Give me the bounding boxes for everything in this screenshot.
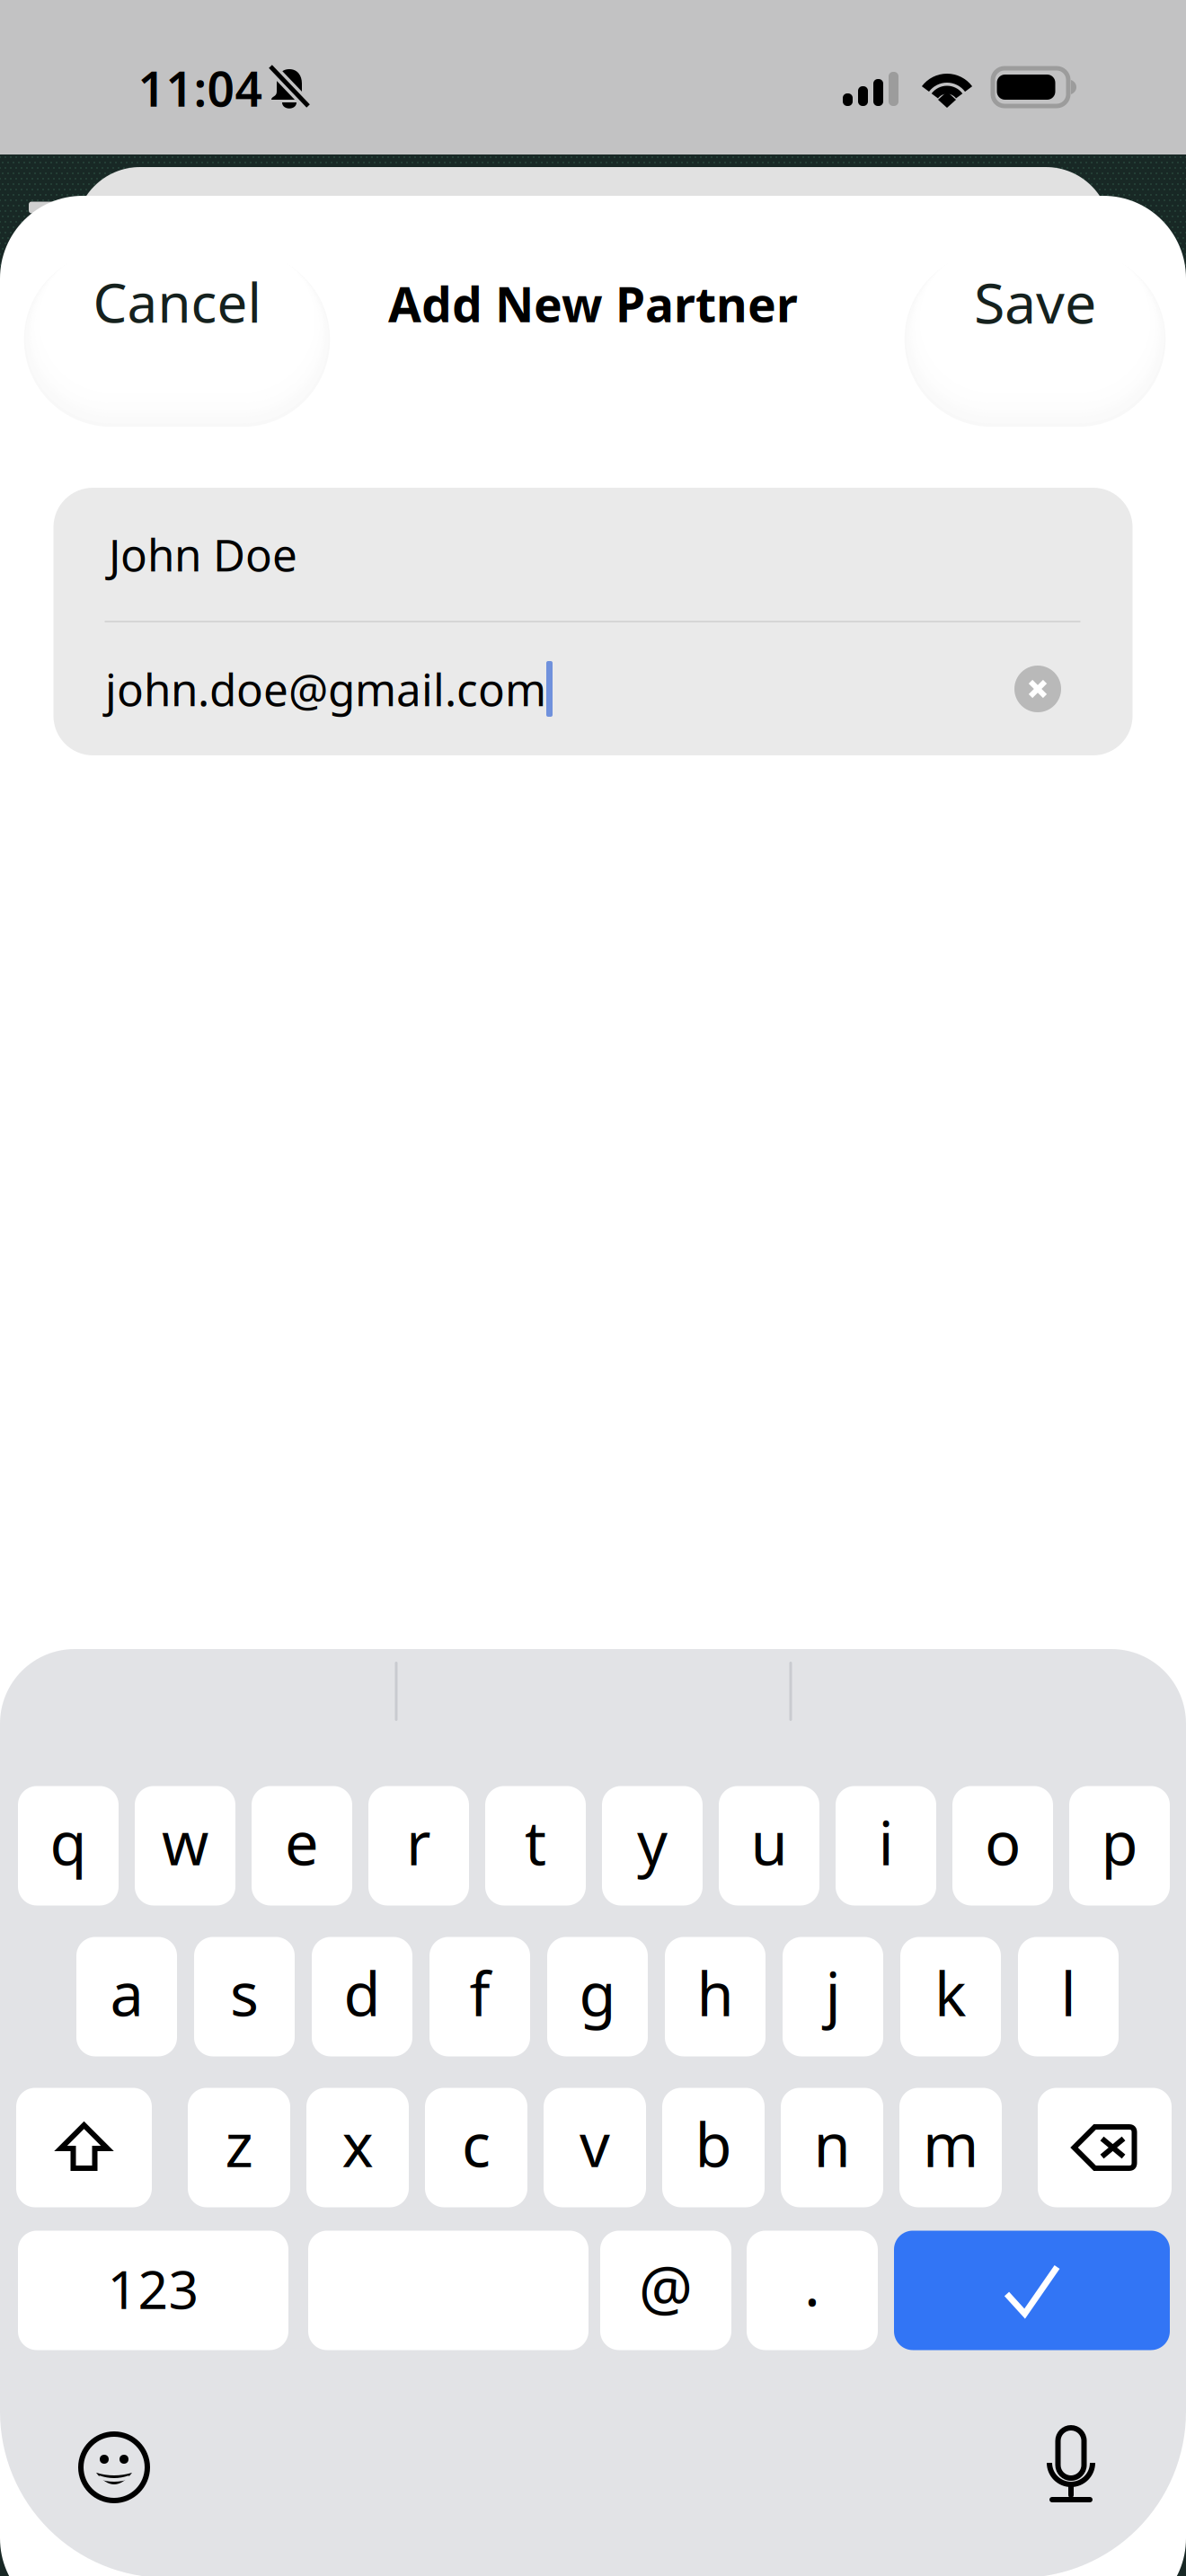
staticText: y: [637, 1802, 668, 1882]
staticText: l: [1061, 1953, 1076, 2033]
button[interactable]: q: [18, 1786, 119, 1906]
button[interactable]: u: [719, 1786, 819, 1906]
staticText: n: [814, 2104, 850, 2184]
staticText: s: [230, 1953, 259, 2033]
button[interactable]: o: [952, 1786, 1053, 1906]
staticText: a: [110, 1953, 143, 2033]
button[interactable]: i: [836, 1786, 936, 1906]
staticText: d: [344, 1953, 381, 2033]
staticText: 11:04: [138, 56, 263, 120]
staticText: k: [934, 1953, 967, 2033]
button[interactable]: Emoji: [77, 2430, 151, 2504]
button[interactable]: Dictation: [1043, 2425, 1099, 2504]
button[interactable]: g: [547, 1937, 648, 2056]
button[interactable]: john.doe@gmail.com: [53, 622, 1132, 756]
staticText: b: [695, 2104, 732, 2184]
staticText: j: [825, 1953, 841, 2033]
button[interactable]: f: [429, 1937, 530, 2056]
button[interactable]: t: [485, 1786, 586, 1906]
button[interactable]: a: [76, 1937, 177, 2056]
button[interactable]: p: [1069, 1786, 1170, 1906]
staticText: Cancel: [93, 266, 261, 338]
button[interactable]: c: [425, 2088, 527, 2207]
button[interactable]: e: [252, 1786, 352, 1906]
staticText: w: [162, 1802, 208, 1882]
button[interactable]: .: [747, 2231, 878, 2350]
button[interactable]: k: [900, 1937, 1001, 2056]
button[interactable]: h: [665, 1937, 766, 2056]
button[interactable]: v: [544, 2088, 646, 2207]
staticText: @: [639, 2247, 693, 2326]
staticText: r: [406, 1802, 431, 1882]
button[interactable]: Return: [894, 2231, 1170, 2350]
staticText: u: [751, 1802, 788, 1882]
staticText: v: [580, 2104, 610, 2184]
staticText: f: [469, 1953, 490, 2033]
staticText: c: [462, 2104, 491, 2184]
button[interactable]: z: [188, 2088, 290, 2207]
staticText: x: [342, 2104, 373, 2184]
button[interactable]: x: [306, 2088, 409, 2207]
staticText: o: [985, 1802, 1021, 1882]
button[interactable]: John Doe: [53, 487, 1132, 621]
button[interactable]: m: [899, 2088, 1002, 2207]
button[interactable]: Save: [884, 187, 1186, 420]
staticText: Save: [974, 264, 1096, 339]
staticText: John Doe: [109, 525, 297, 584]
button[interactable]: j: [783, 1937, 883, 2056]
button[interactable]: 123: [18, 2231, 288, 2350]
button[interactable]: Space: [308, 2231, 589, 2350]
button[interactable]: y: [602, 1786, 703, 1906]
button[interactable]: Cancel: [4, 187, 350, 420]
staticText: m: [923, 2104, 978, 2184]
staticText: g: [579, 1953, 616, 2033]
button[interactable]: b: [662, 2088, 765, 2207]
button[interactable]: r: [368, 1786, 469, 1906]
staticText: e: [285, 1802, 319, 1882]
button[interactable]: s: [194, 1937, 295, 2056]
staticText: q: [50, 1802, 87, 1882]
staticText: john.doe@gmail.com: [105, 659, 546, 718]
button[interactable]: d: [312, 1937, 412, 2056]
staticText: t: [525, 1802, 546, 1882]
staticText: h: [697, 1953, 734, 2033]
button[interactable]: w: [135, 1786, 235, 1906]
button[interactable]: l: [1018, 1937, 1119, 2056]
staticText: 123: [107, 2254, 199, 2324]
staticText: z: [225, 2104, 253, 2184]
button[interactable]: n: [781, 2088, 883, 2207]
staticText: Add New Partner: [388, 272, 798, 335]
staticText: .: [804, 2243, 820, 2323]
button[interactable]: Shift: [16, 2088, 152, 2207]
button[interactable]: @: [600, 2231, 731, 2350]
staticText: i: [878, 1802, 894, 1882]
button[interactable]: Delete: [1038, 2088, 1172, 2207]
staticText: p: [1101, 1802, 1138, 1882]
